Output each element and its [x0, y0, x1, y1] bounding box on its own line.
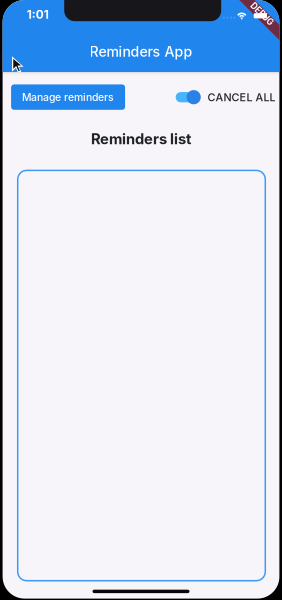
- staticText: Manage reminders: [22, 91, 114, 103]
- staticText: Reminders App: [89, 43, 192, 60]
- button[interactable]: CANCEL ALL: [176, 82, 273, 112]
- staticText: CANCEL ALL: [207, 91, 275, 104]
- staticText: Reminders list: [91, 130, 191, 148]
- staticText: 1:01: [27, 7, 49, 21]
- staticText: DEBUG: [248, 9, 276, 19]
- button[interactable]: Manage reminders: [11, 84, 125, 110]
